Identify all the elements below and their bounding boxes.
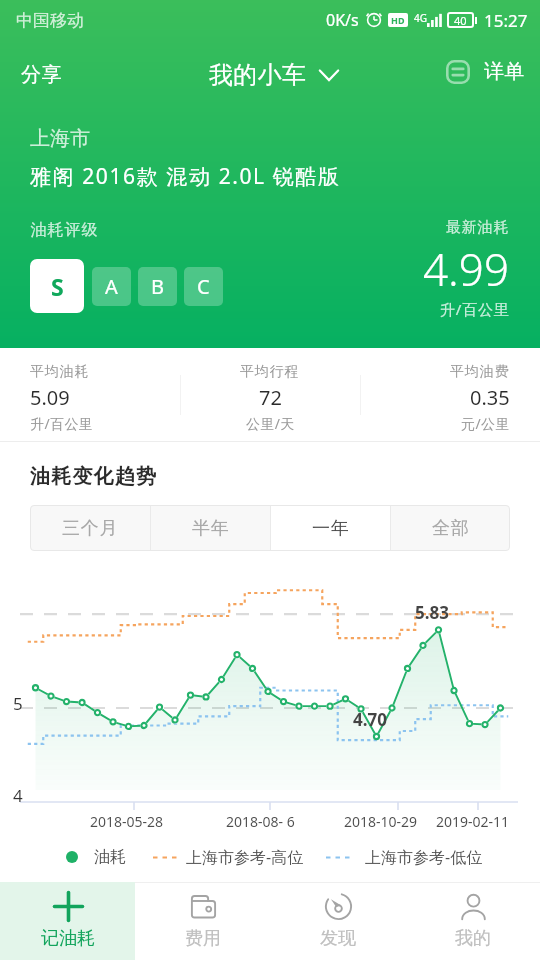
- staticText: 4: [13, 784, 23, 807]
- staticText: 平均行程: [240, 363, 300, 381]
- staticText: 2019-02-11: [436, 812, 510, 831]
- staticText: 费用: [185, 927, 221, 950]
- staticText: 中国移动: [16, 10, 84, 31]
- button[interactable]: B: [138, 267, 177, 306]
- button[interactable]: 半年: [151, 505, 270, 551]
- staticText: A: [105, 273, 118, 300]
- button[interactable]: 全部: [391, 505, 510, 551]
- staticText: 一年: [312, 517, 350, 540]
- staticText: HD: [391, 14, 405, 26]
- staticText: 2018-05-28: [90, 812, 164, 831]
- button[interactable]: S: [30, 259, 84, 313]
- staticText: 发现: [320, 927, 356, 950]
- staticText: 上海市参考-高位: [186, 846, 304, 868]
- button[interactable]: 一年: [271, 505, 390, 551]
- staticText: 15:27: [484, 9, 528, 32]
- staticText: 4.99: [423, 239, 510, 299]
- staticText: 5.09: [30, 384, 70, 411]
- staticText: 上海市: [30, 126, 90, 151]
- staticText: 4.70: [353, 708, 387, 731]
- staticText: 三个月: [62, 517, 119, 540]
- button[interactable]: 分享: [0, 48, 80, 101]
- staticText: 我的小车: [209, 60, 307, 90]
- button[interactable]: 我的: [405, 882, 540, 960]
- staticText: 最新油耗: [446, 218, 510, 237]
- staticText: 我的: [455, 927, 491, 950]
- staticText: 平均油耗: [30, 363, 90, 381]
- button[interactable]: 我的小车: [201, 48, 347, 102]
- staticText: 2018-08- 6: [226, 812, 295, 831]
- button[interactable]: 费用: [135, 882, 270, 960]
- button[interactable]: 发现: [270, 882, 405, 960]
- staticText: 雅阁 2016款 混动 2.0L 锐酷版: [30, 162, 341, 191]
- staticText: 详单: [484, 59, 525, 84]
- button[interactable]: C: [184, 267, 223, 306]
- staticText: 升/百公里: [440, 299, 510, 319]
- staticText: 半年: [192, 517, 230, 540]
- staticText: C: [197, 273, 210, 300]
- staticText: 5: [13, 692, 23, 715]
- button[interactable]: 三个月: [30, 505, 150, 551]
- button[interactable]: A: [92, 267, 131, 306]
- staticText: 全部: [432, 517, 470, 540]
- staticText: 记油耗: [41, 927, 95, 950]
- staticText: 上海市参考-低位: [365, 846, 483, 868]
- staticText: 公里/天: [246, 414, 295, 433]
- staticText: S: [51, 271, 64, 302]
- staticText: 2018-10-29: [344, 812, 418, 831]
- staticText: 平均油费: [450, 363, 510, 381]
- staticText: 油耗评级: [30, 220, 98, 240]
- staticText: 40: [454, 13, 467, 28]
- staticText: 油耗变化趋势: [30, 464, 158, 489]
- staticText: B: [151, 273, 164, 300]
- staticText: 分享: [21, 62, 62, 87]
- staticText: 4G: [414, 11, 427, 25]
- button[interactable]: 详单: [432, 48, 540, 95]
- staticText: 0.35: [470, 384, 510, 411]
- staticText: 72: [259, 384, 282, 411]
- staticText: 元/公里: [461, 414, 510, 433]
- staticText: 升/百公里: [30, 414, 94, 433]
- staticText: 0K/s: [326, 9, 359, 31]
- staticText: 5.83: [415, 601, 449, 624]
- button[interactable]: 记油耗: [0, 882, 135, 960]
- staticText: 油耗: [94, 847, 126, 867]
